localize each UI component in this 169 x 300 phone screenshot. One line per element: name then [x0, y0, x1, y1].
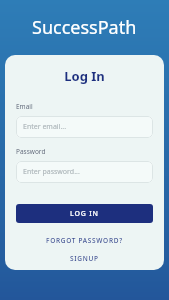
button[interactable]: FORGOT PASSWORD? — [16, 236, 153, 245]
button[interactable]: Enter email... — [16, 116, 153, 138]
staticText: SIGNUP — [70, 254, 99, 263]
staticText: SuccessPath — [32, 15, 137, 40]
button[interactable]: LOG IN — [16, 204, 153, 223]
button[interactable]: Enter password... — [16, 161, 153, 183]
staticText: Log In — [16, 67, 153, 85]
staticText: Email — [16, 102, 33, 111]
button[interactable]: SIGNUP — [16, 254, 153, 263]
staticText: Enter email... — [23, 122, 67, 132]
staticText: FORGOT PASSWORD? — [46, 236, 123, 245]
staticText: LOG IN — [70, 209, 99, 219]
staticText: Password — [16, 147, 46, 156]
staticText: Enter password... — [23, 167, 80, 177]
